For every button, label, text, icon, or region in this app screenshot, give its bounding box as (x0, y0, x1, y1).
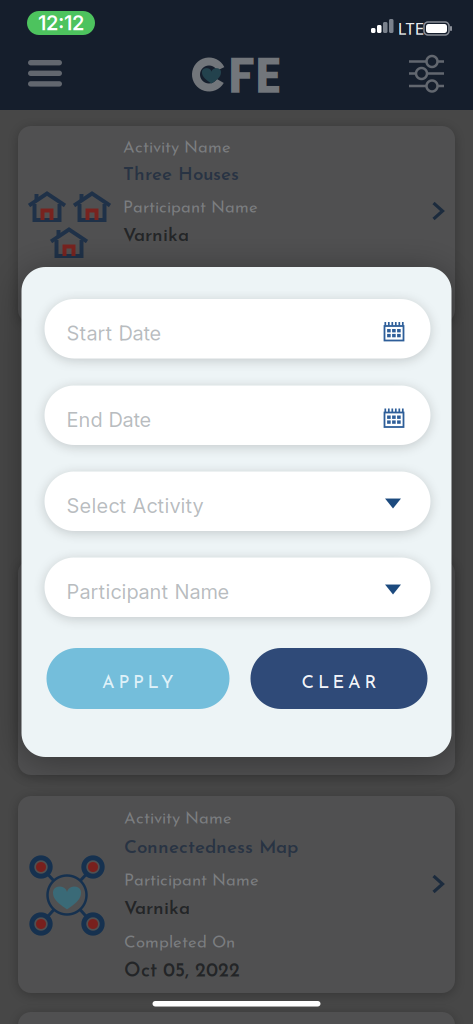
staticText: Start Date (66, 321, 161, 345)
staticText: Varnika (124, 900, 190, 919)
staticText: Completed On (124, 935, 235, 952)
button[interactable]: Activity Name (0, 126, 473, 323)
button[interactable]: Participant Name (44, 557, 430, 617)
button[interactable]: CLEAR (250, 648, 427, 709)
staticText: Select Activity (66, 493, 203, 518)
staticText: End Date (66, 407, 151, 432)
staticText: Connectedness Map (124, 839, 298, 858)
button[interactable]: FE (192, 57, 282, 92)
button[interactable]: Select Activity (44, 471, 430, 531)
staticText: Oct 05, 2022 (124, 962, 240, 981)
staticText: Three Houses (123, 166, 239, 185)
staticText: LTE (398, 20, 424, 39)
staticText: Participant Name (66, 579, 229, 604)
staticText: FE (228, 41, 282, 110)
staticText: Activity Name (123, 140, 231, 157)
staticText: Participant Name (123, 200, 258, 217)
staticText: Varnika (123, 227, 189, 246)
button[interactable] (28, 60, 62, 87)
button[interactable] (409, 56, 445, 92)
button[interactable]: APPLY (46, 648, 229, 709)
staticText: 12:12 (38, 11, 84, 35)
staticText: CLEAR (301, 674, 376, 692)
button[interactable]: End Date (44, 385, 430, 445)
staticText: Participant Name (124, 873, 259, 890)
button[interactable]: Start Date (44, 299, 430, 358)
staticText: APPLY (102, 674, 174, 692)
staticText: Activity Name (124, 811, 232, 828)
button[interactable]: Activity Name (0, 796, 473, 993)
